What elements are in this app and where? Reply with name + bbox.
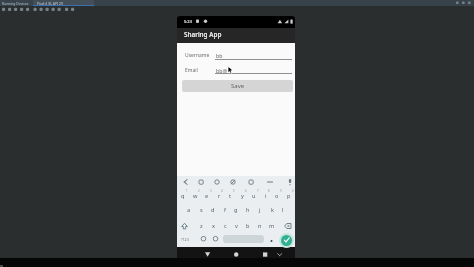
staticText: 8 bbox=[268, 189, 270, 193]
staticText: 0 bbox=[292, 189, 294, 193]
staticText: b bbox=[246, 222, 250, 230]
staticText: j bbox=[259, 206, 261, 214]
staticText: Save bbox=[231, 82, 245, 90]
staticText: k bbox=[271, 206, 274, 214]
staticText: Pixel 4 XL API 29 bbox=[37, 1, 63, 6]
staticText: d bbox=[211, 206, 215, 214]
staticText: 6 bbox=[245, 189, 247, 193]
staticText: 3 bbox=[210, 189, 212, 193]
staticText: Sharing App bbox=[184, 30, 222, 39]
staticText: c bbox=[224, 222, 227, 230]
button[interactable] bbox=[33, 0, 94, 6]
staticText: bb bbox=[216, 52, 223, 59]
staticText: s bbox=[200, 206, 203, 214]
staticText: p bbox=[287, 192, 291, 200]
staticText: Username bbox=[185, 52, 210, 59]
staticText: l bbox=[282, 206, 284, 214]
staticText: w bbox=[193, 192, 198, 200]
staticText: a bbox=[187, 206, 191, 214]
staticText: ?123 bbox=[181, 237, 189, 242]
staticText: n bbox=[258, 222, 262, 230]
staticText: h bbox=[246, 206, 250, 214]
staticText: v bbox=[235, 222, 238, 230]
staticText: f bbox=[224, 206, 226, 214]
staticText: Email bbox=[185, 67, 198, 74]
staticText: 1 bbox=[186, 189, 188, 193]
staticText: e bbox=[205, 192, 209, 200]
staticText: r bbox=[218, 192, 221, 200]
staticText: g bbox=[234, 206, 238, 214]
staticText: o bbox=[275, 192, 279, 200]
staticText: 2 bbox=[198, 189, 200, 193]
button[interactable] bbox=[281, 235, 292, 246]
staticText: 5:23 bbox=[184, 19, 192, 24]
staticText: y bbox=[241, 192, 244, 200]
button[interactable]: Save bbox=[182, 80, 293, 92]
staticText: q bbox=[181, 192, 185, 200]
staticText: i bbox=[265, 192, 267, 200]
staticText: t bbox=[229, 192, 232, 200]
staticText: 5 bbox=[233, 189, 235, 193]
staticText: x bbox=[212, 222, 215, 230]
staticText: Running Devices bbox=[2, 1, 29, 6]
staticText: 4 bbox=[221, 189, 223, 193]
staticText: 7 bbox=[257, 189, 259, 193]
staticText: z bbox=[200, 222, 203, 230]
staticText: u bbox=[252, 192, 256, 200]
staticText: m bbox=[269, 222, 275, 230]
button[interactable] bbox=[223, 235, 264, 243]
staticText: 9 bbox=[280, 189, 282, 193]
staticText: bb@ bbox=[216, 67, 228, 74]
